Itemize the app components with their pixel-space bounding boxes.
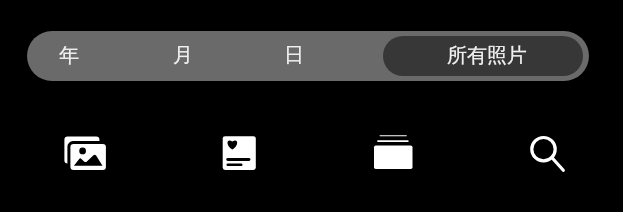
staticText: 月: [173, 43, 193, 68]
button[interactable]: 月: [133, 31, 233, 80]
button[interactable]: Albums: [360, 120, 428, 188]
button[interactable]: Photos: [52, 120, 120, 188]
button[interactable]: 日: [244, 31, 344, 80]
staticText: 年: [59, 43, 79, 68]
button[interactable]: [383, 36, 583, 76]
button[interactable]: 年: [27, 31, 119, 80]
button[interactable]: Search: [512, 120, 576, 188]
staticText: 所有照片: [447, 43, 527, 68]
button[interactable]: Memories: [208, 120, 272, 188]
button[interactable]: 所有照片: [437, 31, 537, 80]
staticText: 日: [284, 43, 304, 68]
